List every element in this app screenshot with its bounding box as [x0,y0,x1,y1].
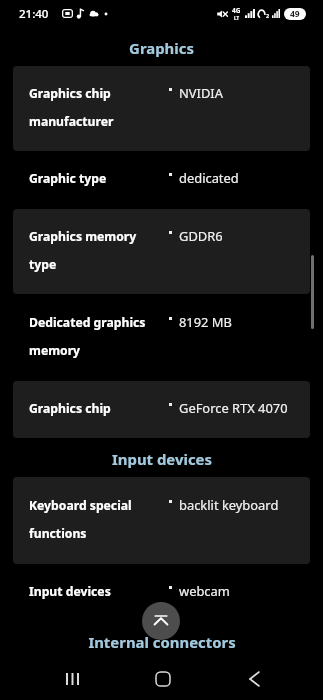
button[interactable]: Graphics chip [13,381,310,438]
staticText: Graphics memory [29,228,137,245]
staticText: 4G [232,6,241,15]
staticText: GeForce RTX 4070 [179,399,288,417]
button[interactable]: Input devices [13,564,310,621]
button[interactable]: Dedicated graphics [13,294,310,381]
staticText: 8192 MB [179,313,232,331]
staticText: GDDR6 [179,227,223,245]
button[interactable]: Keyboard special [13,477,310,564]
staticText: Dedicated graphics [29,314,146,331]
button[interactable]: Graphic type [13,151,310,209]
staticText: dedicated [179,169,239,187]
staticText: functions [29,525,87,542]
staticText: NVIDIA [179,84,223,102]
button[interactable]: Graphics chip [13,66,310,151]
staticText: Keyboard special [29,497,132,514]
staticText: type [29,256,57,273]
button[interactable]: Back [226,660,282,698]
staticText: Graphics [129,38,194,58]
staticText: LT [234,15,240,21]
staticText: Input devices [29,583,111,600]
staticText: webcam [179,582,230,600]
button[interactable]: Home [135,660,191,698]
button[interactable]: Graphics memory [13,209,310,294]
staticText: Graphic type [29,170,107,187]
staticText: Internal connectors [88,632,236,652]
staticText: Graphics chip [29,400,111,417]
staticText: backlit keyboard [179,496,279,514]
staticText: manufacturer [29,113,114,130]
staticText: 49 [290,8,300,20]
staticText: 21:40 [19,6,49,22]
staticText: Graphics chip [29,85,111,102]
button[interactable]: Recent apps [44,660,100,698]
staticText: 2 [266,12,270,19]
staticText: Input devices [112,449,212,469]
button[interactable]: Scroll to top [142,602,180,640]
staticText: memory [29,342,81,359]
